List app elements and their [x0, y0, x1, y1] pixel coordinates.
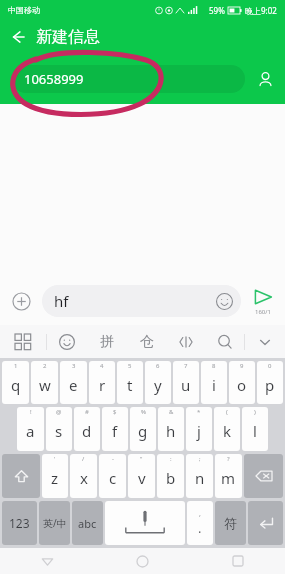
button[interactable]: 9 — [229, 361, 255, 404]
staticText: % — [141, 408, 146, 416]
button[interactable]: Symbols — [166, 325, 205, 358]
button[interactable]: 2 — [31, 361, 58, 404]
button[interactable]: Shift — [2, 454, 40, 498]
button[interactable]: * — [186, 407, 212, 451]
button[interactable]: Backspace — [244, 454, 283, 498]
staticText: 9 — [240, 362, 244, 370]
button[interactable]: 7 — [173, 361, 199, 404]
button[interactable]: Back — [0, 20, 36, 54]
staticText: 5 — [128, 362, 132, 370]
button[interactable]: abc — [72, 501, 103, 545]
button[interactable]: 123 — [2, 501, 37, 545]
button[interactable]: hf — [42, 285, 241, 317]
staticText: 10658999 — [24, 70, 84, 88]
staticText: : — [170, 455, 172, 463]
staticText: ) — [254, 408, 256, 416]
button[interactable]: # — [74, 407, 100, 451]
staticText: ! — [30, 408, 32, 416]
button[interactable]: 6 — [145, 361, 171, 404]
staticText: v — [138, 468, 146, 488]
staticText: 7 — [184, 362, 188, 370]
button[interactable]: 仓 — [127, 325, 166, 358]
button[interactable]: ) — [242, 407, 268, 451]
staticText: / — [82, 455, 85, 463]
button[interactable]: 1 — [2, 361, 29, 404]
button[interactable]: @ — [46, 407, 72, 451]
staticText: 160/1 — [255, 308, 271, 316]
button[interactable]: Choose contact — [245, 54, 285, 104]
button[interactable]: 10658999 — [12, 65, 245, 93]
staticText: q — [11, 375, 21, 395]
button[interactable]: ' — [42, 454, 68, 498]
staticText: . — [198, 519, 202, 537]
staticText: o — [237, 375, 247, 395]
staticText: n — [195, 468, 205, 488]
button[interactable]: 0 — [257, 361, 283, 404]
staticText: u — [181, 375, 191, 395]
button[interactable]: & — [158, 407, 184, 451]
button[interactable]: Add attachment — [0, 277, 42, 325]
staticText: l — [253, 421, 257, 441]
staticText: y — [154, 375, 162, 395]
staticText: x — [80, 468, 88, 488]
staticText: 中国移动 — [8, 5, 40, 15]
button[interactable]: - — [99, 454, 126, 498]
staticText: abc — [78, 516, 97, 531]
staticText: $ — [113, 408, 117, 416]
staticText: 1 — [14, 362, 18, 370]
button[interactable]: : — [157, 454, 184, 498]
button[interactable]: Search — [205, 325, 244, 358]
button[interactable]: $ — [102, 407, 128, 451]
staticText: b — [166, 468, 176, 488]
button[interactable]: ! — [17, 407, 44, 451]
button[interactable]: 3 — [60, 361, 87, 404]
button[interactable]: Back — [0, 548, 95, 574]
button[interactable]: 8 — [201, 361, 227, 404]
button[interactable]: Emoji — [216, 293, 233, 310]
button[interactable]: " — [128, 454, 155, 498]
button[interactable]: ; — [186, 454, 213, 498]
staticText: 4 — [100, 362, 104, 370]
staticText: h — [166, 421, 176, 441]
button[interactable]: ( — [214, 407, 240, 451]
button[interactable]: Recents — [190, 548, 285, 574]
staticText: w — [39, 375, 51, 395]
button[interactable]: % — [130, 407, 156, 451]
staticText: r — [99, 375, 106, 395]
button[interactable]: Home — [95, 548, 190, 574]
staticText: 6 — [156, 362, 160, 370]
button[interactable]: Keyboard modes — [0, 325, 46, 358]
button[interactable]: Send — [241, 277, 285, 325]
button[interactable]: Symbols — [215, 501, 246, 545]
staticText: j — [197, 421, 201, 441]
button[interactable]: Period — [187, 501, 213, 545]
staticText: - — [112, 455, 114, 463]
staticText: g — [138, 421, 148, 441]
button[interactable]: English Chinese — [39, 501, 70, 545]
button[interactable]: 5 — [117, 361, 143, 404]
staticText: 新建信息 — [36, 27, 100, 47]
staticText: # — [85, 408, 89, 416]
button[interactable]: ? — [215, 454, 242, 498]
staticText: 符 — [224, 515, 237, 531]
staticText: d — [82, 421, 92, 441]
staticText: 仓 — [140, 333, 154, 351]
staticText: 2 — [43, 362, 47, 370]
staticText: 晚上9:02 — [245, 5, 277, 16]
button[interactable]: Emoji — [47, 325, 87, 358]
staticText: @ — [56, 408, 62, 416]
staticText: k — [223, 421, 232, 441]
staticText: ' — [54, 455, 56, 463]
button[interactable]: 拼 — [87, 325, 127, 358]
staticText: ( — [226, 408, 228, 416]
button[interactable]: Space — [105, 501, 185, 545]
staticText: 123 — [9, 515, 30, 531]
button[interactable]: 4 — [89, 361, 115, 404]
staticText: c — [109, 468, 117, 488]
button[interactable]: Enter — [248, 501, 283, 545]
button[interactable]: / — [70, 454, 97, 498]
button[interactable]: Hide keyboard — [245, 325, 285, 358]
staticText: , — [199, 509, 201, 519]
staticText: " — [140, 455, 143, 463]
staticText: ? — [227, 455, 230, 463]
